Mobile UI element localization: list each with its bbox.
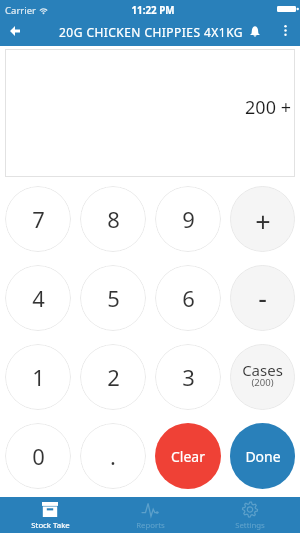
staticText: 1 bbox=[32, 362, 45, 392]
button[interactable]: 5 bbox=[80, 265, 146, 331]
staticText: Stock Take bbox=[31, 520, 70, 531]
staticText: Clear bbox=[171, 447, 205, 466]
staticText: (200) bbox=[251, 376, 274, 389]
staticText: 200 + bbox=[245, 95, 291, 120]
button[interactable]: 2 bbox=[80, 344, 146, 410]
button[interactable]: Reports bbox=[100, 497, 200, 533]
button[interactable]: Cases bbox=[230, 344, 295, 410]
button[interactable]: Stock Take bbox=[0, 497, 100, 533]
button[interactable]: Notifications bbox=[244, 20, 266, 42]
staticText: + bbox=[255, 203, 271, 240]
button[interactable]: Done bbox=[230, 423, 295, 489]
staticText: Reports bbox=[136, 520, 165, 531]
staticText: 20G CHICKEN CHIPPIES 4X1KG bbox=[59, 24, 243, 40]
button[interactable]: Clear bbox=[155, 423, 221, 489]
button[interactable]: + bbox=[230, 186, 295, 252]
button[interactable]: More options bbox=[270, 19, 300, 41]
staticText: 0 bbox=[32, 441, 45, 471]
staticText: Carrier bbox=[5, 4, 36, 17]
staticText: 7 bbox=[32, 204, 45, 234]
button[interactable]: 1 bbox=[5, 344, 71, 410]
button[interactable]: Back bbox=[3, 19, 27, 43]
staticText: Cases bbox=[242, 360, 283, 380]
staticText: Done bbox=[245, 447, 281, 466]
staticText: 2 bbox=[107, 362, 120, 392]
button[interactable]: 7 bbox=[5, 186, 71, 252]
button[interactable]: 9 bbox=[155, 186, 221, 252]
staticText: Settings bbox=[235, 520, 265, 531]
button[interactable]: 6 bbox=[155, 265, 221, 331]
staticText: 11:22 PM bbox=[131, 4, 175, 17]
staticText: 6 bbox=[182, 283, 195, 313]
staticText: 8 bbox=[107, 204, 120, 234]
button[interactable]: - bbox=[230, 265, 295, 331]
button[interactable]: 4 bbox=[5, 265, 71, 331]
button[interactable]: 3 bbox=[155, 344, 221, 410]
staticText: . bbox=[110, 441, 116, 471]
button[interactable]: Settings bbox=[200, 497, 300, 533]
staticText: - bbox=[258, 279, 267, 316]
staticText: 4 bbox=[32, 283, 45, 313]
staticText: 5 bbox=[107, 283, 120, 313]
staticText: 3 bbox=[182, 362, 195, 392]
button[interactable]: 0 bbox=[5, 423, 71, 489]
button[interactable]: 8 bbox=[80, 186, 146, 252]
staticText: 9 bbox=[182, 204, 195, 234]
button[interactable]: . bbox=[80, 423, 146, 489]
